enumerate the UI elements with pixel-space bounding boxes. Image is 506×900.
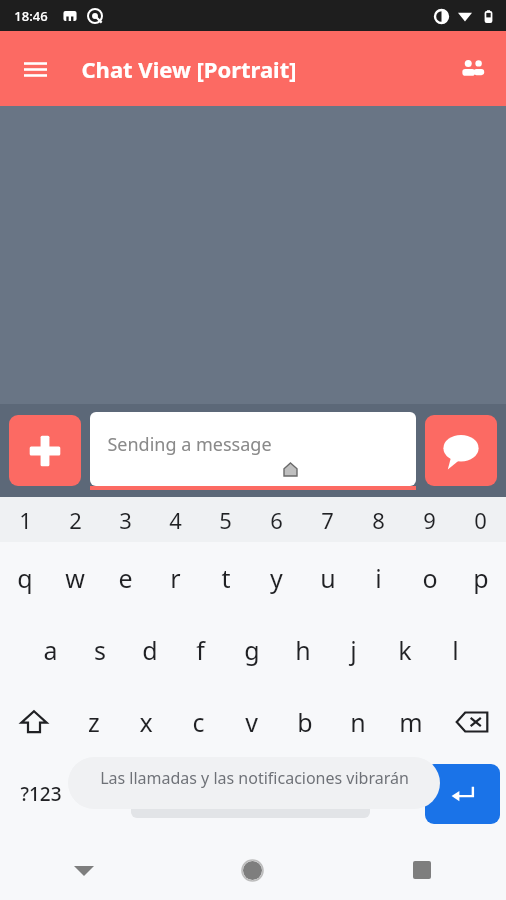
button[interactable]: .: [370, 758, 419, 830]
button[interactable]: p: [455, 542, 506, 614]
button[interactable]: Shift: [0, 686, 68, 758]
button[interactable]: j: [328, 614, 379, 686]
staticText: i: [375, 561, 382, 595]
staticText: q: [17, 561, 33, 595]
staticText: f: [196, 633, 205, 667]
staticText: 2: [69, 505, 82, 535]
button[interactable]: 6: [251, 497, 302, 542]
button[interactable]: z: [68, 686, 120, 758]
button[interactable]: Open navigation menu: [10, 44, 60, 94]
staticText: English: [222, 783, 280, 806]
button[interactable]: b: [278, 686, 331, 758]
staticText: 18:46: [14, 7, 48, 25]
button[interactable]: n: [331, 686, 384, 758]
button[interactable]: 3: [100, 497, 150, 542]
button[interactable]: u: [302, 542, 353, 614]
button[interactable]: k: [379, 614, 430, 686]
button[interactable]: Recent apps: [337, 840, 506, 900]
staticText: 6: [270, 505, 283, 535]
button[interactable]: Add attachment: [9, 415, 81, 486]
staticText: w: [65, 561, 85, 595]
button[interactable]: y: [251, 542, 302, 614]
staticText: j: [350, 633, 357, 667]
staticText: r: [170, 561, 181, 595]
button[interactable]: o: [404, 542, 455, 614]
staticText: 5: [219, 505, 232, 535]
button[interactable]: h: [277, 614, 328, 686]
button[interactable]: Backspace: [437, 686, 506, 758]
button[interactable]: t: [200, 542, 251, 614]
staticText: 1: [19, 505, 32, 535]
staticText: z: [88, 705, 100, 739]
button[interactable]: Enter: [425, 764, 500, 824]
button[interactable]: e: [100, 542, 150, 614]
button[interactable]: 5: [200, 497, 251, 542]
staticText: 9: [423, 505, 436, 535]
staticText: d: [142, 633, 158, 667]
button[interactable]: x: [120, 686, 172, 758]
staticText: Chat View [Portrait]: [81, 54, 297, 84]
staticText: b: [297, 705, 313, 739]
button[interactable]: Sending a message: [90, 412, 416, 490]
staticText: u: [320, 561, 336, 595]
button[interactable]: 2: [50, 497, 100, 542]
staticText: t: [221, 561, 231, 595]
staticText: y: [270, 561, 283, 595]
staticText: e: [118, 561, 133, 595]
staticText: o: [422, 561, 438, 595]
staticText: a: [43, 633, 58, 667]
staticText: Sending a message: [107, 432, 272, 457]
button[interactable]: g: [226, 614, 277, 686]
staticText: g: [244, 633, 260, 667]
button[interactable]: q: [0, 542, 50, 614]
button[interactable]: Home: [168, 840, 337, 900]
button[interactable]: d: [125, 614, 175, 686]
button[interactable]: m: [384, 686, 437, 758]
staticText: 4: [169, 505, 182, 535]
staticText: m: [399, 705, 423, 739]
staticText: c: [192, 705, 205, 739]
button[interactable]: a: [25, 614, 75, 686]
staticText: ,: [103, 770, 110, 804]
staticText: h: [295, 633, 311, 667]
button[interactable]: ?123: [0, 758, 82, 830]
staticText: 8: [372, 505, 385, 535]
button[interactable]: i: [353, 542, 404, 614]
button[interactable]: Back: [0, 840, 168, 900]
staticText: v: [245, 705, 258, 739]
staticText: .: [391, 770, 398, 804]
button[interactable]: English: [131, 770, 370, 818]
staticText: l: [452, 633, 459, 667]
button[interactable]: v: [225, 686, 278, 758]
button[interactable]: ,: [82, 758, 131, 830]
button[interactable]: 9: [404, 497, 455, 542]
button[interactable]: 7: [302, 497, 353, 542]
button[interactable]: 8: [353, 497, 404, 542]
staticText: k: [398, 633, 412, 667]
staticText: 0: [474, 505, 487, 535]
staticText: 3: [119, 505, 132, 535]
button[interactable]: 1: [0, 497, 50, 542]
button[interactable]: s: [75, 614, 125, 686]
button[interactable]: r: [150, 542, 200, 614]
button[interactable]: Send message: [425, 415, 497, 486]
button[interactable]: c: [172, 686, 225, 758]
staticText: n: [350, 705, 366, 739]
button[interactable]: Participants: [448, 44, 498, 94]
button[interactable]: l: [430, 614, 481, 686]
button[interactable]: f: [175, 614, 226, 686]
staticText: ?123: [20, 781, 62, 807]
staticText: Las llamadas y las notificaciones vibrar…: [100, 767, 409, 789]
staticText: 7: [321, 505, 334, 535]
staticText: p: [473, 561, 489, 595]
button[interactable]: 0: [455, 497, 506, 542]
button[interactable]: w: [50, 542, 100, 614]
button[interactable]: 4: [150, 497, 200, 542]
staticText: s: [94, 633, 106, 667]
staticText: x: [139, 705, 153, 739]
